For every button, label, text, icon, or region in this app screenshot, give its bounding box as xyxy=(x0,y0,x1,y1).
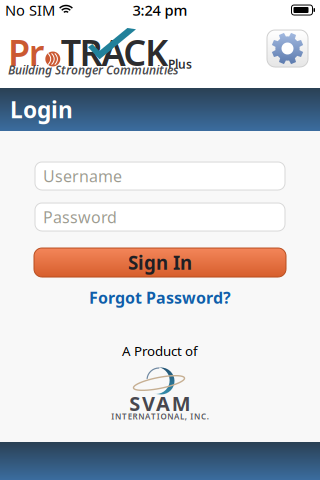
staticText: Building Stronger Communities xyxy=(8,62,179,78)
staticText: No SIM xyxy=(5,0,55,20)
staticText: Login xyxy=(10,94,73,124)
staticText: 3:24 pm xyxy=(132,0,187,20)
staticText: Password xyxy=(43,206,117,228)
staticText: Pr xyxy=(8,28,45,76)
button[interactable]: Forgot Password? xyxy=(89,287,231,308)
button[interactable]: Sign In xyxy=(34,248,286,277)
staticText: A Product of xyxy=(122,342,198,360)
staticText: Username xyxy=(43,165,122,187)
staticText: TRACK xyxy=(61,28,168,76)
button[interactable]: Settings xyxy=(267,30,308,67)
staticText: Forgot Password? xyxy=(89,287,231,308)
staticText: INTERNATIONAL, INC. xyxy=(111,411,209,422)
staticText: Plus xyxy=(168,56,192,72)
textField[interactable]: Username xyxy=(43,165,285,187)
staticText: SVAM xyxy=(129,390,191,417)
staticText: Sign In xyxy=(128,250,192,275)
secureTextField[interactable]: Password xyxy=(43,206,285,228)
